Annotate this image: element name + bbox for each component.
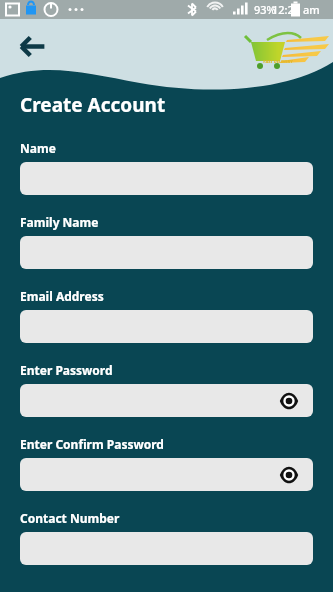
staticText: 12:23 am	[272, 2, 320, 17]
staticText: 93%	[254, 2, 276, 17]
staticText: Enter Confirm Password	[20, 436, 164, 452]
button[interactable]	[20, 162, 313, 195]
button[interactable]	[20, 310, 313, 343]
button[interactable]: Show password	[20, 458, 313, 491]
button[interactable]: Show password	[279, 465, 299, 485]
button[interactable]: Show password	[279, 391, 299, 411]
button[interactable]: Show password	[20, 384, 313, 417]
staticText: FAST DELIVERY	[263, 59, 293, 64]
staticText: Name	[20, 140, 56, 156]
staticText: Create Account	[20, 92, 166, 118]
staticText: Enter Password	[20, 362, 113, 378]
staticText: Email Address	[20, 288, 104, 304]
staticText: Family Name	[20, 214, 99, 230]
staticText: Contact Number	[20, 510, 120, 526]
button[interactable]	[20, 532, 313, 565]
button[interactable]	[20, 236, 313, 269]
button[interactable]: Back	[16, 30, 49, 63]
